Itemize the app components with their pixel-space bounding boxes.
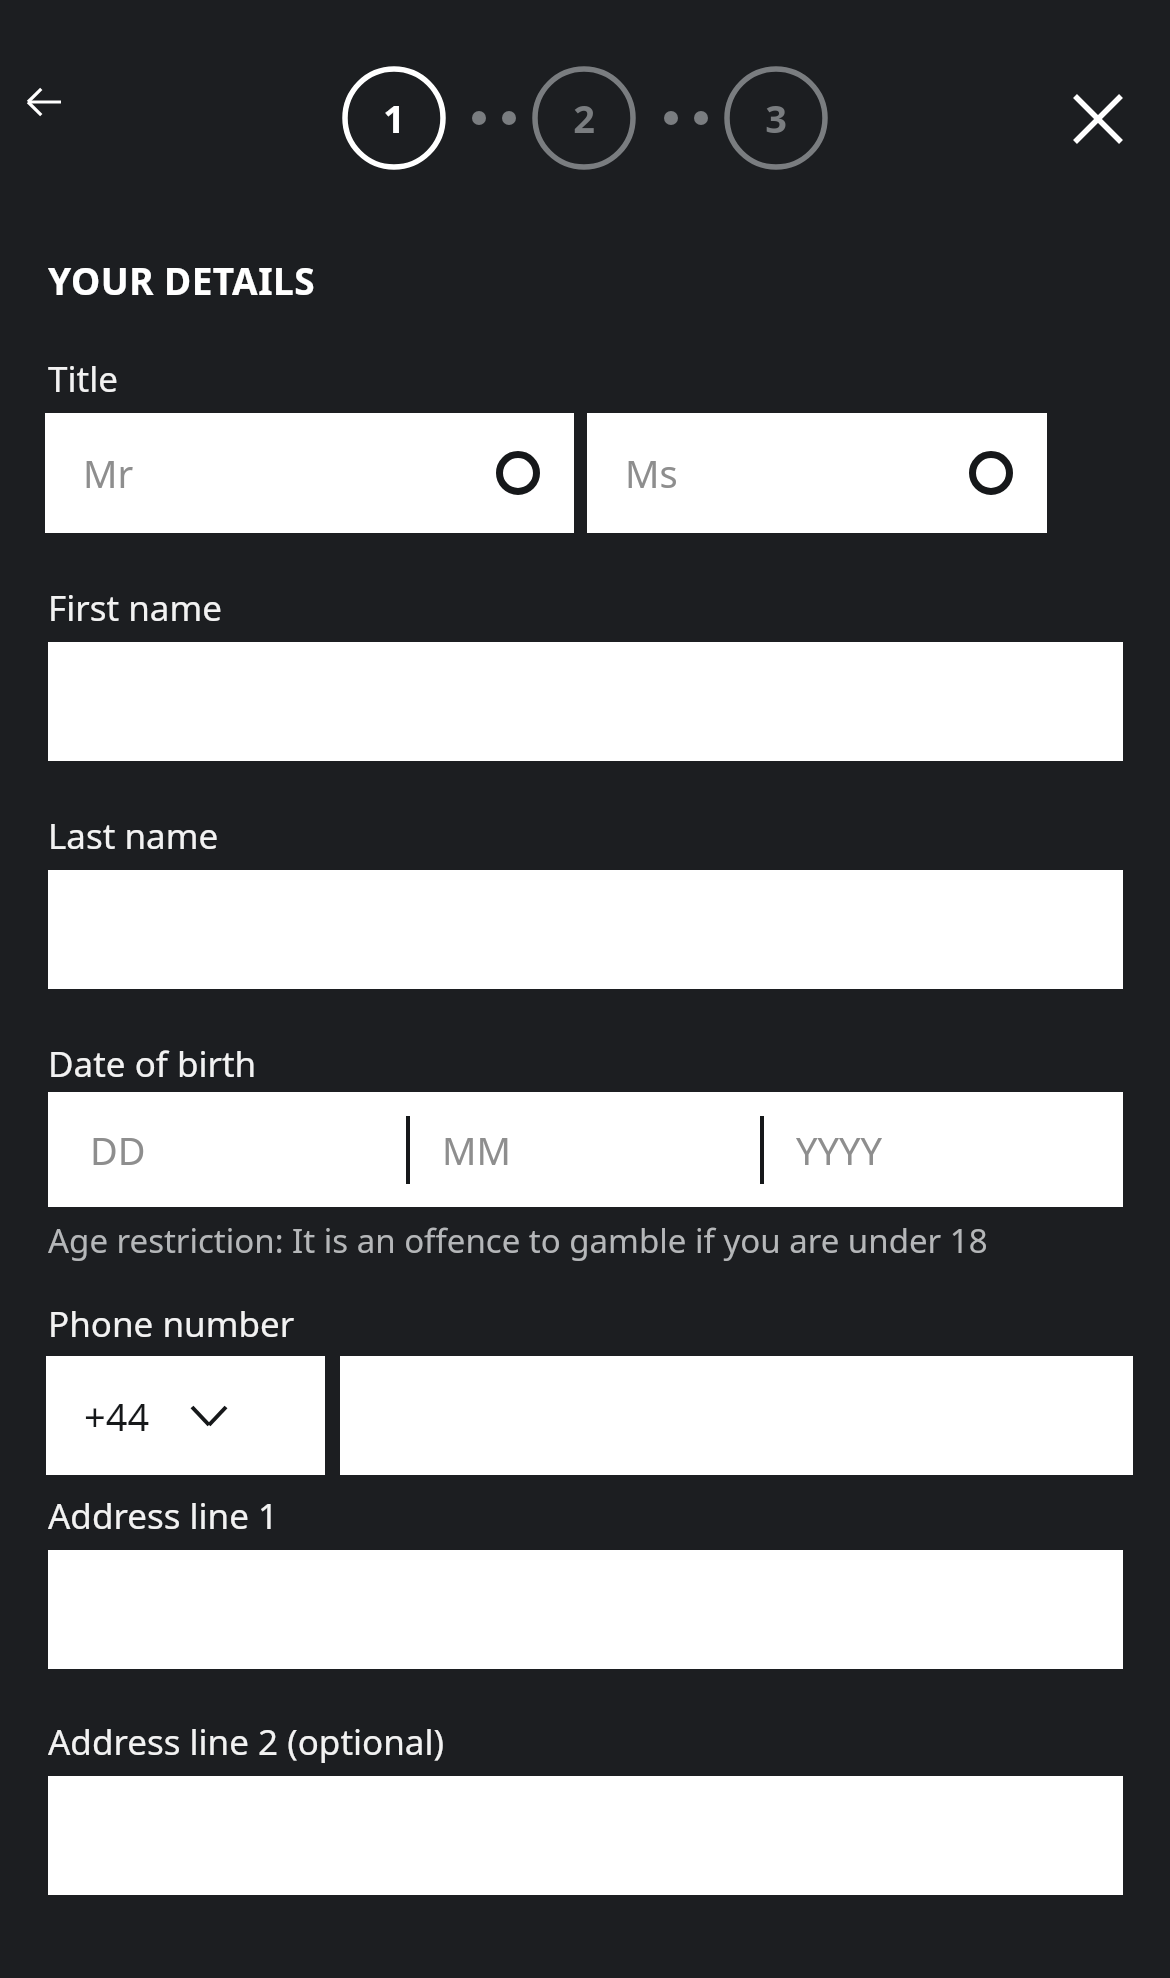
staticText: Age restriction: It is an offence to gam… [48, 1218, 988, 1263]
staticText: Phone number [48, 1300, 295, 1348]
button[interactable]: Step 3 [724, 66, 828, 170]
staticText: Address line 1 [48, 1492, 279, 1540]
button[interactable]: Close [1060, 81, 1136, 157]
button[interactable]: +44 [46, 1356, 325, 1475]
staticText: DD [90, 1124, 146, 1176]
staticText: 2 [573, 92, 595, 144]
button[interactable]: Ms [587, 413, 1047, 533]
button[interactable]: Step 2 [532, 66, 636, 170]
staticText: 1 [383, 92, 405, 144]
staticText: Date of birth [48, 1040, 257, 1088]
staticText: MM [442, 1124, 511, 1176]
staticText: Mr [83, 447, 134, 499]
staticText: First name [48, 584, 222, 632]
staticText: Address line 2 (optional) [48, 1718, 445, 1766]
button[interactable]: Step 1 [342, 66, 446, 170]
staticText: Last name [48, 812, 219, 860]
staticText: 3 [765, 92, 787, 144]
staticText: YYYY [796, 1124, 883, 1176]
button[interactable]: Mr [45, 413, 574, 533]
staticText: Title [48, 355, 118, 403]
button[interactable]: DD [48, 1092, 1123, 1207]
staticText: Ms [625, 447, 678, 499]
button[interactable]: Back [14, 72, 74, 132]
staticText: YOUR DETAILS [48, 255, 316, 305]
staticText: +44 [84, 1390, 150, 1442]
